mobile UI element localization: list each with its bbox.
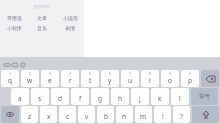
staticText: g: [98, 94, 102, 103]
button[interactable]: 5: [81, 70, 99, 87]
staticText: ?: [180, 112, 183, 121]
button[interactable]: v: [78, 106, 95, 123]
button[interactable]: l: [171, 88, 189, 105]
staticText: h: [118, 94, 123, 103]
button[interactable]: 常用语: [0, 13, 28, 23]
button[interactable]: 9: [161, 70, 179, 87]
staticText: 表情: [65, 25, 75, 31]
staticText: 音乐: [37, 25, 47, 31]
staticText: z: [28, 112, 32, 121]
staticText: j: [139, 94, 141, 103]
button[interactable]: Backspace: [201, 70, 219, 87]
staticText: x: [47, 112, 51, 121]
staticText: 5: [89, 71, 92, 76]
staticText: 2: [29, 71, 32, 76]
staticText: i: [149, 76, 151, 85]
staticText: s: [38, 94, 42, 103]
staticText: 小程序: [7, 25, 22, 31]
staticText: !: [162, 112, 164, 121]
button[interactable]: 6: [101, 70, 119, 87]
staticText: 4: [69, 71, 72, 76]
button[interactable]: !: [154, 106, 171, 123]
staticText: 9: [169, 71, 172, 76]
staticText: w: [27, 76, 33, 85]
button[interactable]: 音乐: [28, 23, 56, 33]
button[interactable]: 表情: [56, 23, 84, 33]
button[interactable]: g: [91, 88, 109, 105]
button[interactable]: Emoji: [1, 106, 19, 123]
button[interactable]: 0: [181, 70, 199, 87]
staticText: k: [158, 94, 162, 103]
button[interactable]: Shift: [192, 106, 219, 123]
staticText: c: [66, 112, 70, 121]
button[interactable]: 3: [41, 70, 59, 87]
staticText: v: [85, 112, 89, 121]
button[interactable]: 2: [21, 70, 39, 87]
staticText: 8: [149, 71, 152, 76]
button[interactable]: 小说等: [56, 13, 84, 23]
button[interactable]: x: [40, 106, 57, 123]
button[interactable]: 符号: [191, 88, 218, 105]
staticText: 符号: [199, 93, 210, 100]
button[interactable]: 1: [1, 70, 19, 87]
staticText: e: [48, 76, 52, 85]
button[interactable]: Settings: [19, 61, 27, 69]
button[interactable]: 8: [141, 70, 159, 87]
staticText: 0: [189, 71, 192, 76]
button[interactable]: b: [97, 106, 114, 123]
staticText: o: [168, 76, 172, 85]
button[interactable]: f: [71, 88, 89, 105]
button[interactable]: 4: [61, 70, 79, 87]
staticText: b: [104, 112, 108, 121]
button[interactable]: 文章: [28, 13, 56, 23]
button[interactable]: j: [131, 88, 149, 105]
button[interactable]: Clipboard: [11, 61, 19, 69]
staticText: q: [8, 76, 12, 85]
staticText: u: [128, 76, 133, 85]
staticText: a: [18, 94, 22, 103]
button[interactable]: a: [11, 88, 29, 105]
button[interactable]: d: [51, 88, 69, 105]
staticText: 6: [109, 71, 112, 76]
button[interactable]: s: [31, 88, 49, 105]
staticText: 更多功能: [34, 4, 50, 9]
button[interactable]: n: [116, 106, 133, 123]
staticText: 常用语: [7, 15, 22, 21]
staticText: n: [122, 112, 127, 121]
staticText: y: [108, 76, 112, 85]
staticText: m: [140, 112, 147, 121]
staticText: f: [79, 94, 82, 103]
button[interactable]: k: [151, 88, 169, 105]
button[interactable]: m: [135, 106, 152, 123]
staticText: 文章: [37, 15, 47, 21]
button[interactable]: 7: [121, 70, 139, 87]
staticText: 7: [129, 71, 132, 76]
button[interactable]: h: [111, 88, 129, 105]
staticText: d: [58, 94, 62, 103]
button[interactable]: Keyboard layout: [3, 61, 11, 69]
button[interactable]: ?: [173, 106, 190, 123]
staticText: t: [89, 76, 92, 85]
staticText: 小说等: [63, 15, 78, 21]
button[interactable]: 小程序: [0, 23, 28, 33]
button[interactable]: z: [21, 106, 38, 123]
staticText: r: [69, 76, 72, 85]
staticText: l: [179, 94, 181, 103]
staticText: 3: [49, 71, 52, 76]
button[interactable]: c: [59, 106, 76, 123]
staticText: 1: [9, 71, 12, 76]
staticText: p: [188, 76, 192, 85]
